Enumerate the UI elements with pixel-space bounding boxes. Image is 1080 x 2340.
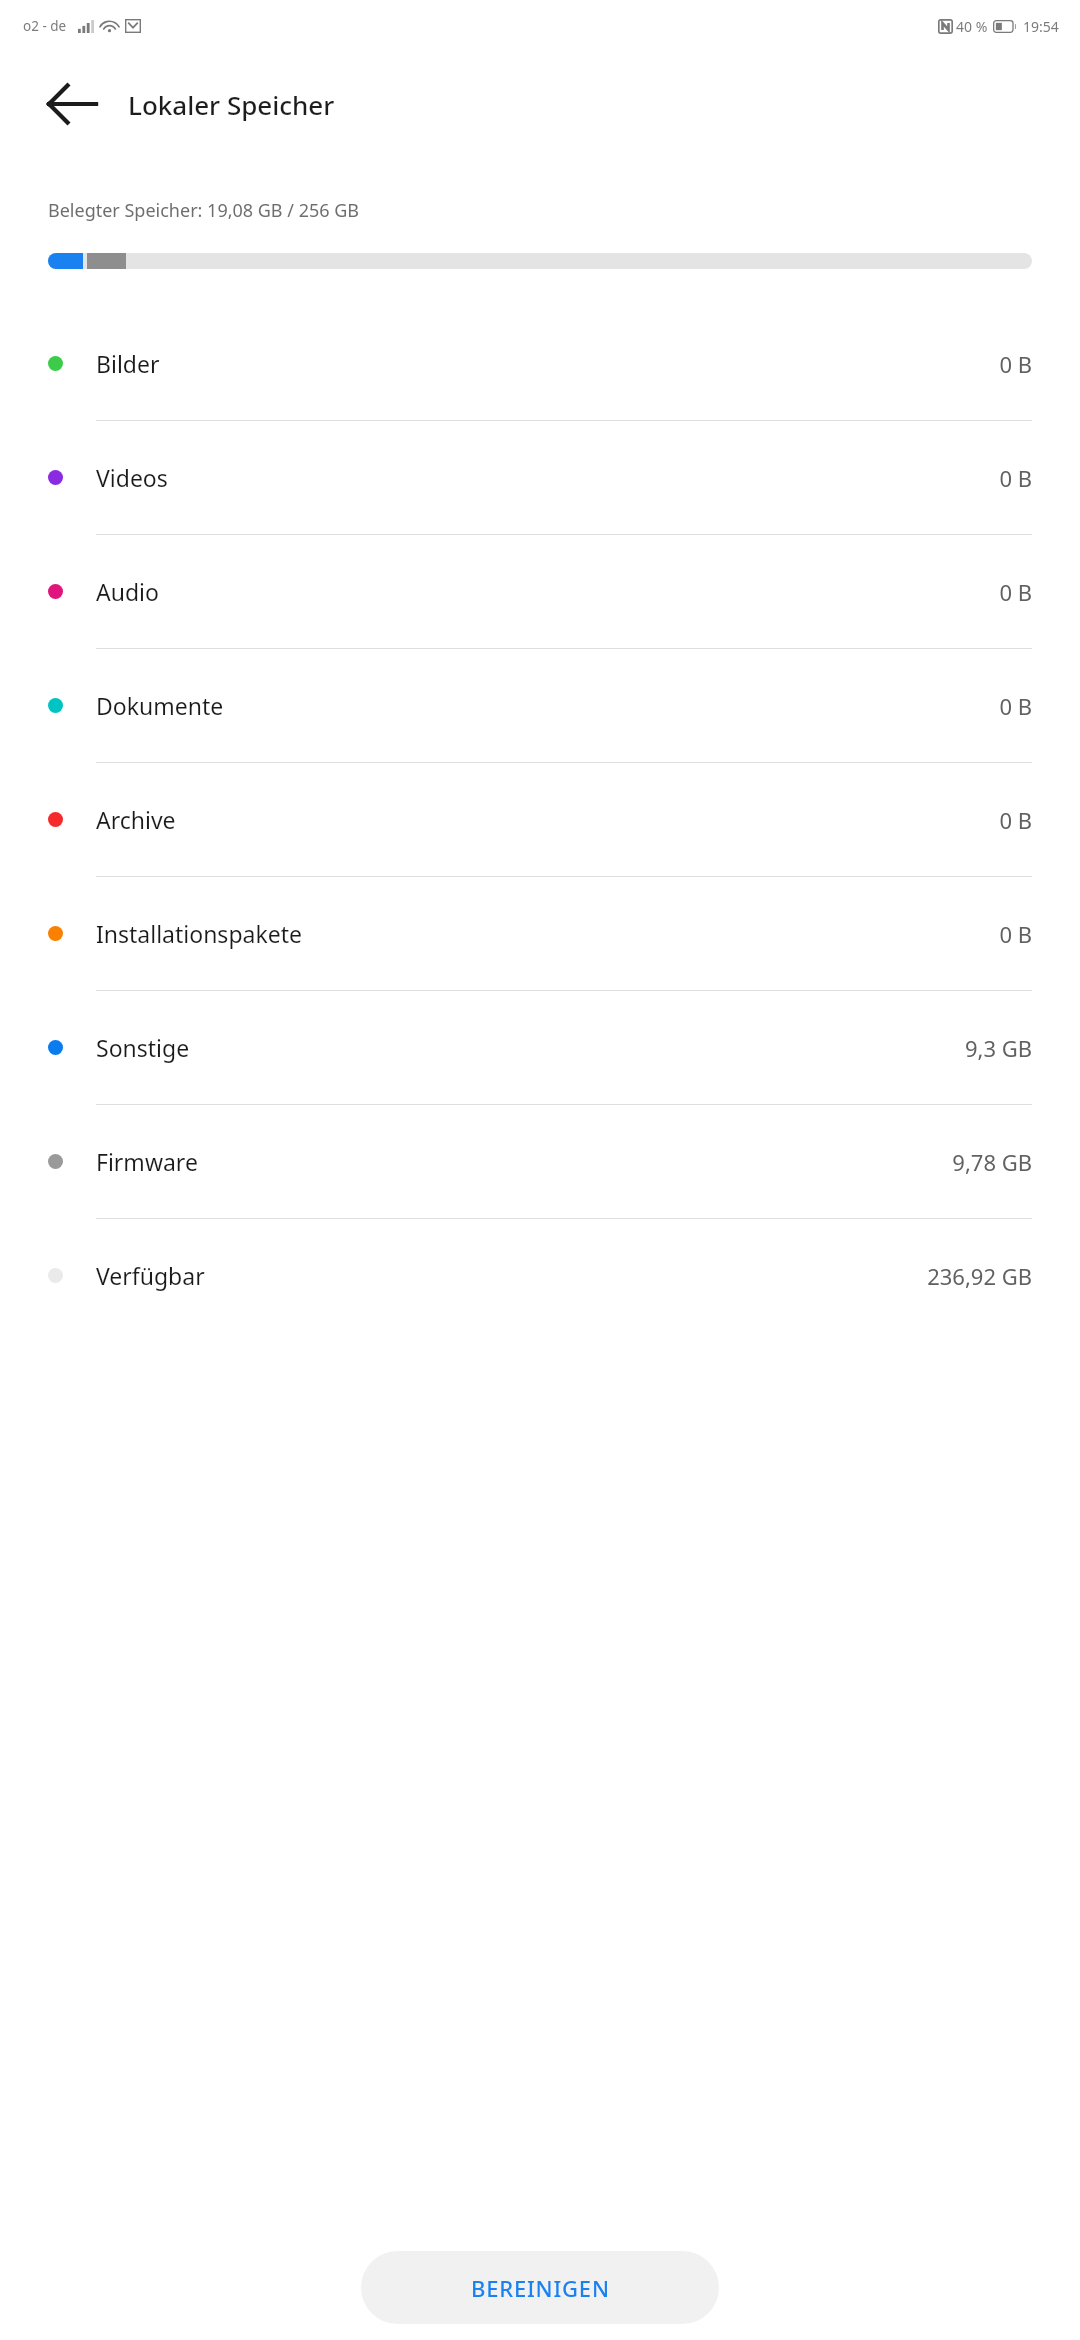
- staticText: Installationspakete: [96, 918, 302, 949]
- button[interactable]: Back: [44, 76, 100, 132]
- staticText: 0 B: [999, 577, 1032, 607]
- staticText: Verfügbar: [96, 1260, 205, 1291]
- staticText: 9,3 GB: [964, 1033, 1032, 1063]
- staticText: 40 %: [956, 17, 988, 36]
- staticText: 19:54: [1023, 17, 1059, 36]
- staticText: Archive: [96, 804, 176, 835]
- button[interactable]: BEREINIGEN: [361, 2251, 719, 2324]
- staticText: BEREINIGEN: [471, 2273, 610, 2303]
- staticText: 0 B: [999, 463, 1032, 493]
- staticText: 9,78 GB: [952, 1147, 1032, 1177]
- staticText: 0 B: [999, 691, 1032, 721]
- staticText: Firmware: [96, 1146, 198, 1177]
- button[interactable]: Audio: [0, 535, 1080, 649]
- button[interactable]: Sonstige: [0, 991, 1080, 1105]
- staticText: Lokaler Speicher: [128, 87, 335, 122]
- staticText: Bilder: [96, 348, 160, 379]
- staticText: 0 B: [999, 919, 1032, 949]
- staticText: o2 - de: [23, 17, 67, 35]
- staticText: Audio: [96, 576, 159, 607]
- button[interactable]: Firmware: [0, 1105, 1080, 1219]
- staticText: Belegter Speicher: 19,08 GB / 256 GB: [48, 198, 360, 223]
- button[interactable]: Installationspakete: [0, 877, 1080, 991]
- staticText: Sonstige: [96, 1032, 190, 1063]
- button[interactable]: Bilder: [0, 307, 1080, 421]
- staticText: 0 B: [999, 805, 1032, 835]
- staticText: Videos: [96, 462, 168, 493]
- staticText: Dokumente: [96, 690, 224, 721]
- button[interactable]: Videos: [0, 421, 1080, 535]
- button[interactable]: Dokumente: [0, 649, 1080, 763]
- staticText: 236,92 GB: [927, 1261, 1032, 1291]
- button[interactable]: Archive: [0, 763, 1080, 877]
- staticText: 0 B: [999, 349, 1032, 379]
- button[interactable]: Verfügbar: [0, 1219, 1080, 1332]
